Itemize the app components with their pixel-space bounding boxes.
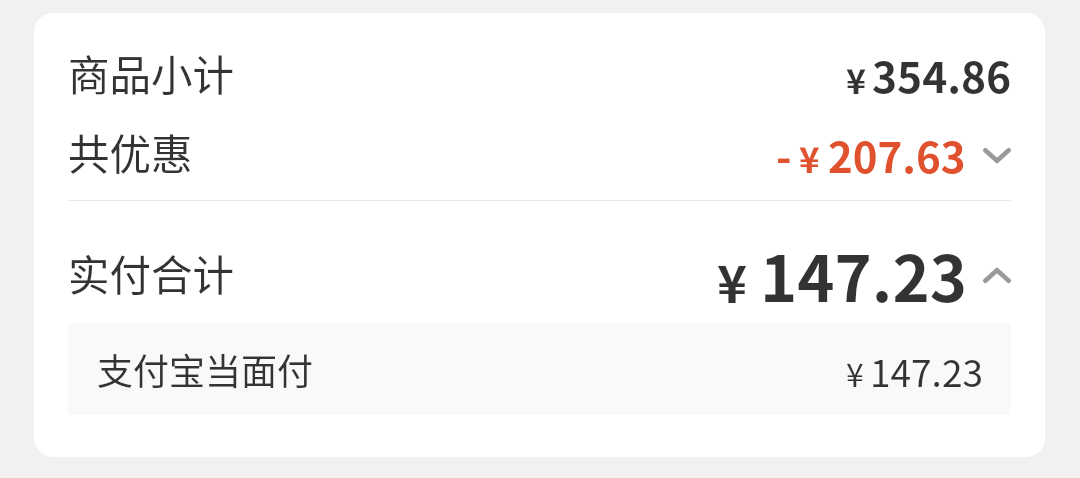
- button[interactable]: 共优惠: [34, 114, 1045, 189]
- staticText: ¥: [717, 244, 748, 318]
- staticText: 207.63: [828, 124, 966, 185]
- staticText: 147.23: [760, 229, 967, 319]
- button[interactable]: 支付宝当面付: [68, 323, 1011, 415]
- staticText: 147.23: [870, 344, 983, 398]
- staticText: -: [776, 124, 792, 185]
- button[interactable]: Expand details: [980, 138, 1014, 172]
- button[interactable]: 实付合计: [34, 228, 1045, 318]
- staticText: 支付宝当面付: [97, 343, 314, 395]
- staticText: 354.86: [872, 44, 1012, 106]
- staticText: 商品小计: [68, 43, 235, 103]
- staticText: 实付合计: [68, 243, 235, 303]
- button[interactable]: 商品小计: [34, 35, 1045, 110]
- button[interactable]: Collapse details: [980, 258, 1014, 292]
- staticText: 共优惠: [68, 122, 193, 182]
- staticText: ¥: [799, 132, 820, 183]
- staticText: ¥: [846, 350, 864, 396]
- staticText: ¥: [846, 55, 867, 104]
